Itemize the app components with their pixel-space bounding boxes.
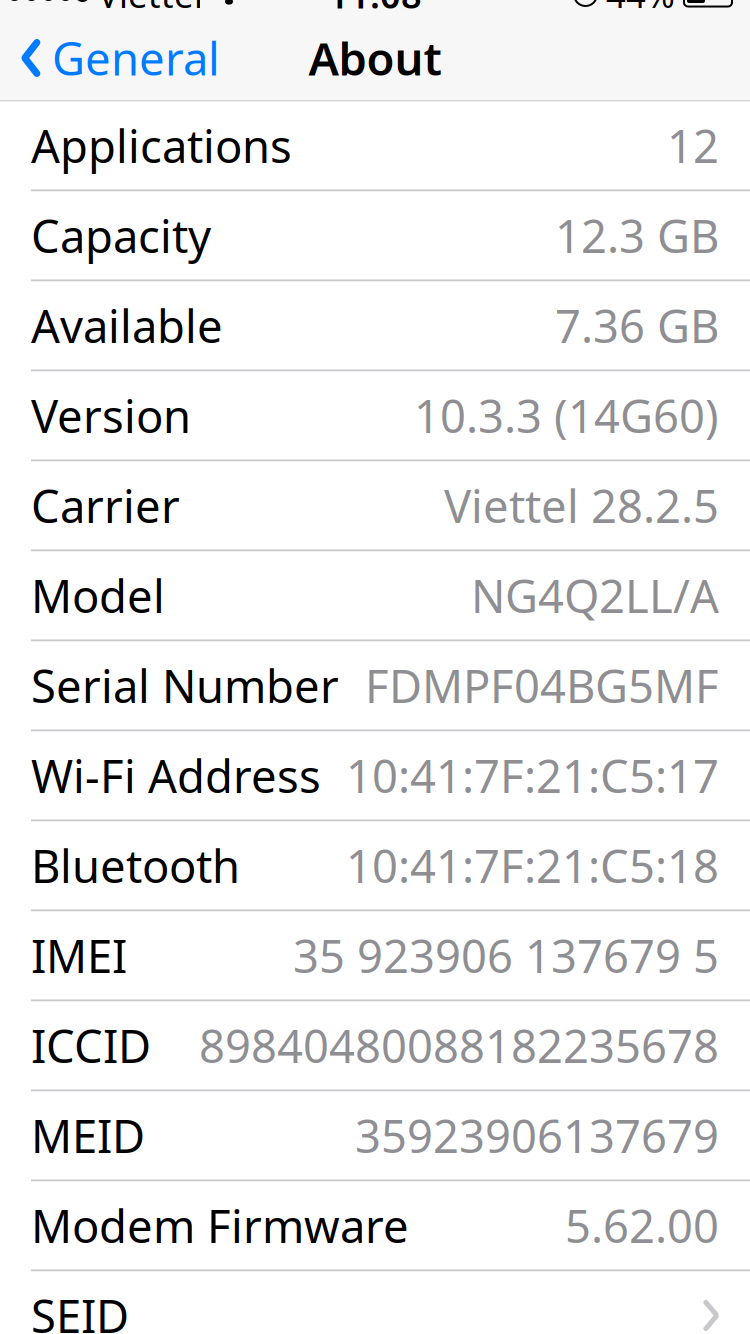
button[interactable]: Modem Firmware xyxy=(0,1181,750,1269)
staticText: 44% xyxy=(606,0,675,17)
button[interactable]: SEID xyxy=(0,1271,750,1334)
staticText: MEID xyxy=(31,1105,145,1166)
staticText: 10:41:7F:21:C5:17 xyxy=(346,745,719,806)
staticText: ICCID xyxy=(31,1015,151,1076)
staticText: Viettel 28.2.5 xyxy=(444,475,719,536)
staticText: Carrier xyxy=(31,475,180,536)
staticText: Serial Number xyxy=(31,655,339,716)
staticText: Bluetooth xyxy=(31,835,240,896)
button[interactable]: General xyxy=(0,14,234,101)
button[interactable]: ICCID xyxy=(0,1001,750,1089)
button[interactable]: Wi-Fi Address xyxy=(0,731,750,819)
staticText: About xyxy=(308,28,441,88)
staticText: 11:08 xyxy=(328,0,422,18)
staticText: Available xyxy=(31,295,223,356)
staticText: 89840480088182235678 xyxy=(199,1015,719,1076)
button[interactable]: Version xyxy=(0,371,750,459)
button[interactable]: IMEI xyxy=(0,911,750,999)
staticText: SEID xyxy=(31,1285,129,1334)
button[interactable]: Applications xyxy=(0,101,750,189)
button[interactable]: Bluetooth xyxy=(0,821,750,909)
staticText: NG4Q2LL/A xyxy=(471,565,719,626)
staticText: 35 923906 137679 5 xyxy=(293,925,719,986)
staticText: 10:41:7F:21:C5:18 xyxy=(346,835,719,896)
button[interactable]: Capacity xyxy=(0,191,750,279)
staticText: 5.62.00 xyxy=(565,1195,719,1256)
staticText: 7.36 GB xyxy=(555,295,719,356)
button[interactable]: Available xyxy=(0,281,750,369)
staticText: Modem Firmware xyxy=(31,1195,409,1256)
staticText: Viettel xyxy=(98,0,203,17)
staticText: 12.3 GB xyxy=(555,205,719,266)
button[interactable]: Model xyxy=(0,551,750,639)
staticText: FDMPF04BG5MF xyxy=(365,655,719,716)
button[interactable]: MEID xyxy=(0,1091,750,1179)
staticText: IMEI xyxy=(31,925,127,986)
staticText: Wi-Fi Address xyxy=(31,745,321,806)
button[interactable]: Carrier xyxy=(0,461,750,549)
staticText: Version xyxy=(31,385,191,446)
staticText: 35923906137679 xyxy=(355,1105,719,1166)
staticText: General xyxy=(52,28,220,88)
staticText: 12 xyxy=(667,115,719,176)
staticText: Applications xyxy=(31,115,292,176)
staticText: 10.3.3 (14G60) xyxy=(414,385,719,446)
staticText: Capacity xyxy=(31,205,211,266)
staticText: Model xyxy=(31,565,165,626)
button[interactable]: Serial Number xyxy=(0,641,750,729)
